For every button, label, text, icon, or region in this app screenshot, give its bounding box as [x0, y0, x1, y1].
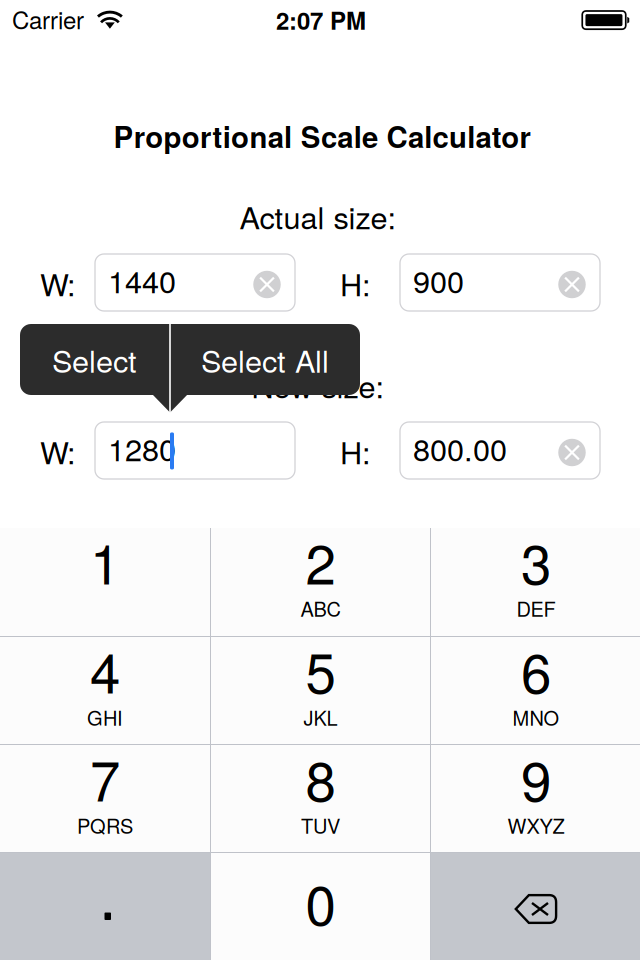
- staticText: Select: [52, 337, 137, 381]
- button[interactable]: Clear text: [550, 424, 594, 481]
- button[interactable]: 900: [400, 254, 600, 311]
- button[interactable]: Select: [20, 324, 169, 395]
- staticText: Select All: [201, 337, 329, 381]
- staticText: Proportional Scale Calculator: [113, 115, 530, 157]
- button[interactable]: Clear text: [550, 256, 594, 313]
- staticText: 5: [305, 631, 335, 709]
- button[interactable]: 9: [431, 745, 640, 853]
- staticText: 2:07 PM: [276, 3, 366, 37]
- button[interactable]: Delete: [431, 853, 640, 960]
- button[interactable]: 4: [0, 637, 210, 745]
- button[interactable]: 0: [211, 853, 430, 960]
- button[interactable]: 3: [431, 528, 640, 636]
- button[interactable]: 2: [211, 528, 430, 636]
- button[interactable]: 1280: [95, 422, 295, 479]
- staticText: 8: [305, 739, 335, 817]
- staticText: 7: [90, 739, 120, 817]
- button[interactable]: 6: [431, 637, 640, 745]
- staticText: 3: [521, 522, 551, 600]
- button[interactable]: Decimal point: [0, 853, 210, 960]
- button[interactable]: 800.00: [400, 422, 600, 479]
- staticText: 900: [413, 258, 464, 302]
- staticText: 4: [90, 631, 120, 709]
- staticText: ABC: [300, 594, 340, 622]
- staticText: 2: [305, 522, 335, 600]
- button[interactable]: 7: [0, 745, 210, 853]
- staticText: GHI: [87, 703, 123, 731]
- staticText: Actual size:: [239, 194, 396, 238]
- staticText: DEF: [516, 594, 555, 622]
- button[interactable]: 1: [0, 528, 210, 636]
- staticText: W:: [40, 261, 76, 305]
- button[interactable]: 8: [211, 745, 430, 853]
- button[interactable]: Clear text: [245, 256, 289, 313]
- staticText: W:: [40, 429, 76, 473]
- staticText: WXYZ: [507, 811, 564, 839]
- staticText: 6: [521, 631, 551, 709]
- staticText: 1: [90, 522, 120, 600]
- staticText: 1440: [108, 258, 176, 302]
- staticText: TUV: [301, 811, 340, 839]
- staticText: MNO: [512, 703, 559, 731]
- staticText: H:: [340, 261, 371, 305]
- staticText: H:: [340, 429, 371, 473]
- button[interactable]: 1440: [95, 254, 295, 311]
- staticText: New size:: [251, 363, 384, 407]
- staticText: JKL: [303, 703, 337, 731]
- staticText: Carrier: [12, 2, 84, 36]
- staticText: 1280: [108, 426, 176, 470]
- staticText: 800.00: [413, 426, 507, 470]
- staticText: PQRS: [77, 811, 133, 839]
- staticText: 9: [521, 739, 551, 817]
- button[interactable]: 5: [211, 637, 430, 745]
- staticText: 0: [305, 863, 335, 941]
- button[interactable]: Select All: [170, 324, 360, 395]
